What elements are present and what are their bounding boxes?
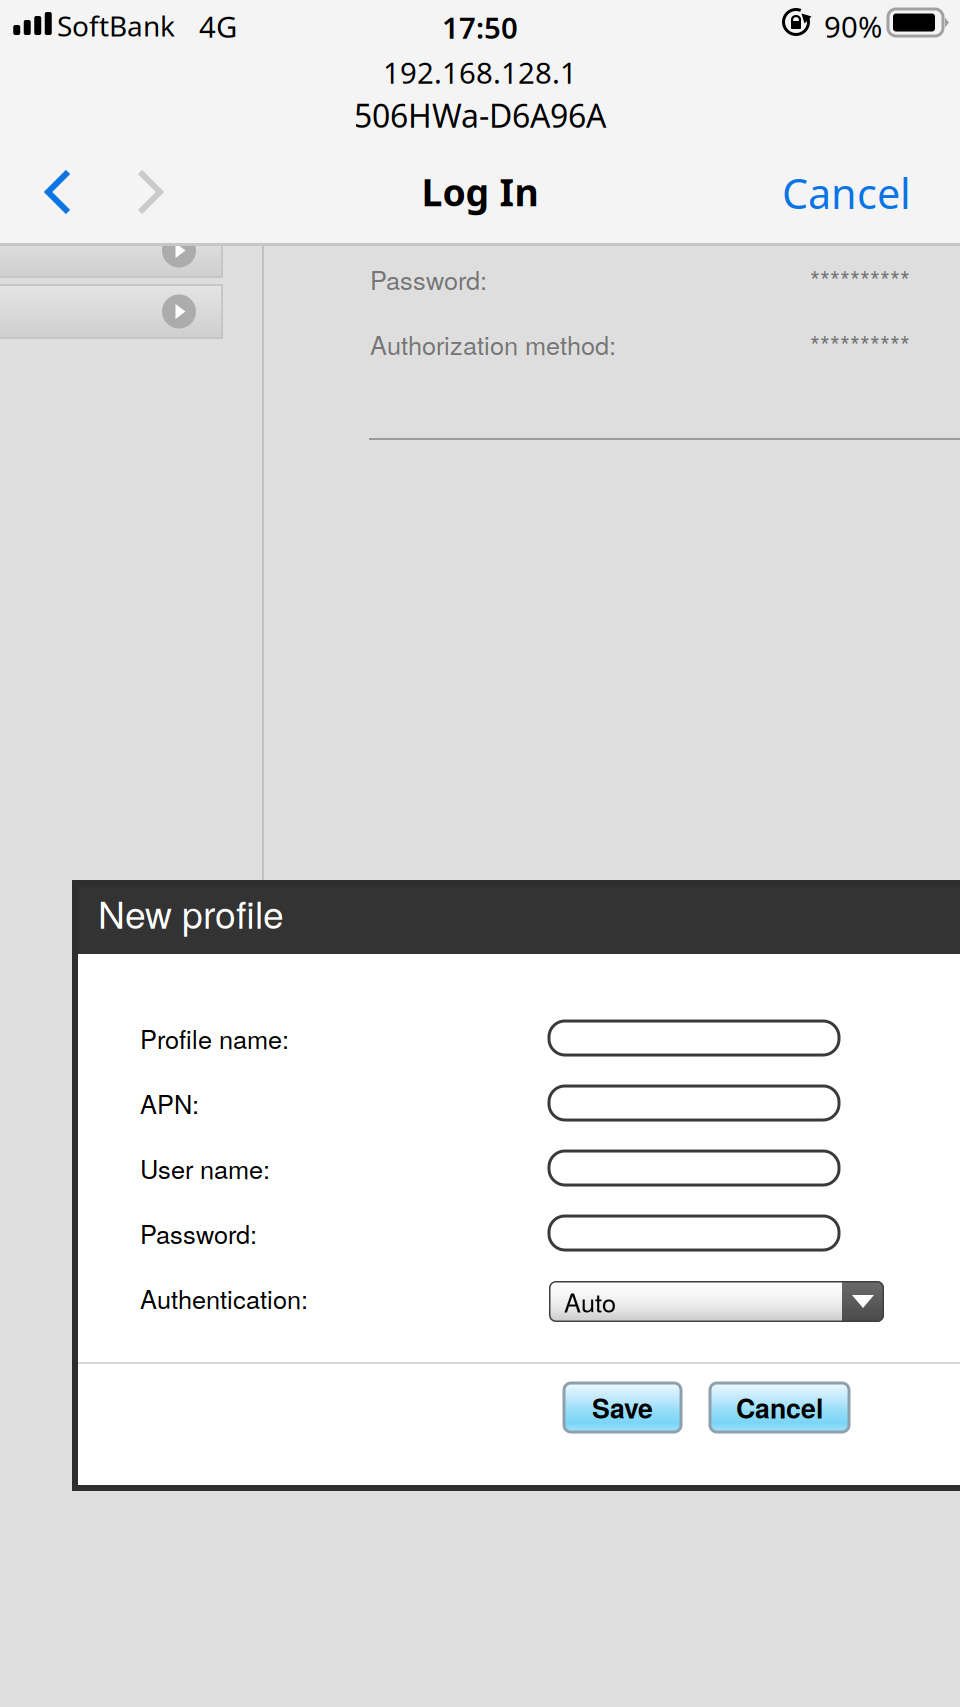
staticText: Cancel	[736, 1388, 823, 1427]
staticText: 192.168.128.1	[383, 53, 577, 92]
staticText: **********	[810, 261, 910, 297]
staticText: 4G	[199, 7, 237, 46]
staticText: Password:	[140, 1215, 257, 1251]
button[interactable]: Cancel	[710, 1383, 849, 1432]
staticText: APN:	[140, 1085, 199, 1121]
staticText: New profile	[98, 886, 284, 939]
staticText: Save	[592, 1388, 653, 1427]
staticText: Cancel	[782, 166, 911, 220]
staticText: 17:50	[442, 8, 518, 47]
staticText: 506HWa-D6A96A	[354, 94, 606, 136]
staticText: Authorization method:	[370, 326, 616, 362]
staticText: **********	[810, 326, 910, 362]
staticText: Log In	[421, 167, 538, 217]
staticText: SoftBank	[57, 7, 175, 44]
staticText: Auto	[564, 1283, 616, 1320]
button[interactable]: Forward	[114, 155, 186, 229]
staticText: 90%	[824, 7, 882, 46]
staticText: Authentication:	[140, 1280, 308, 1316]
button[interactable]: Cancel	[762, 156, 931, 230]
staticText: User name:	[140, 1150, 270, 1186]
staticText: Password:	[370, 261, 487, 297]
staticText: Profile name:	[140, 1020, 289, 1056]
button[interactable]: Back	[22, 155, 94, 229]
button[interactable]: Save	[564, 1383, 681, 1432]
